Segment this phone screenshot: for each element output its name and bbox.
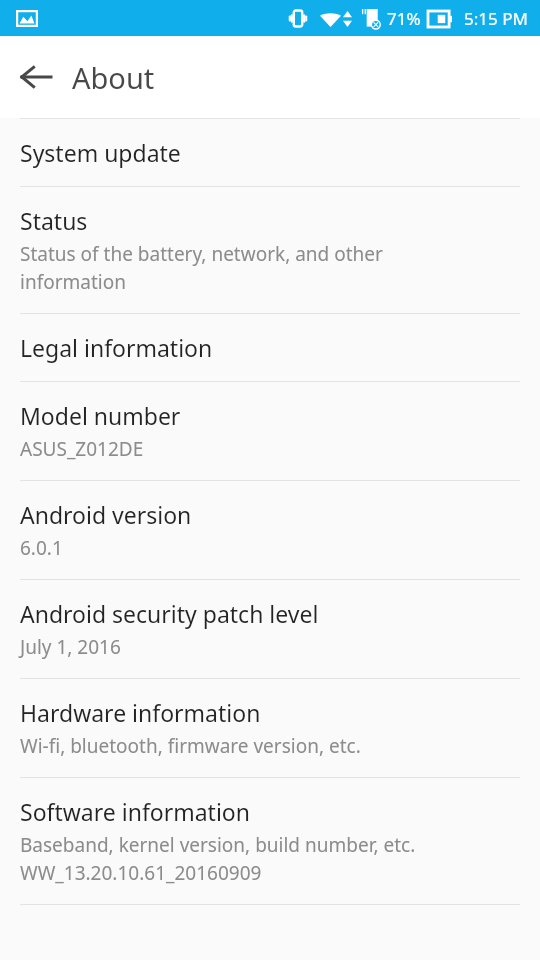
staticText: WW_13.20.10.61_20160909 (20, 860, 262, 886)
button[interactable]: Legal information (0, 314, 540, 382)
staticText: Android security patch level (20, 598, 319, 629)
staticText: Model number (20, 400, 181, 431)
button[interactable]: Status (0, 187, 540, 314)
button[interactable]: Back (8, 49, 64, 105)
button[interactable]: Software information (0, 778, 540, 905)
button[interactable]: Android version (0, 481, 540, 580)
staticText: Status of the battery, network, and othe… (20, 241, 383, 267)
button[interactable]: Model number (0, 382, 540, 481)
button[interactable]: System update (0, 119, 540, 187)
button[interactable]: Android security patch level (0, 580, 540, 679)
staticText: Android version (20, 499, 192, 530)
staticText: Baseband, kernel version, build number, … (20, 832, 416, 858)
button[interactable]: Hardware information (0, 679, 540, 778)
staticText: information (20, 269, 126, 295)
staticText: About (72, 58, 155, 97)
staticText: ASUS_Z012DE (20, 436, 144, 462)
staticText: Software information (20, 796, 250, 827)
staticText: Wi-fi, bluetooth, firmware version, etc. (20, 733, 361, 759)
staticText: 71% (387, 7, 421, 30)
staticText: System update (20, 137, 181, 168)
staticText: 6.0.1 (20, 535, 63, 561)
staticText: Legal information (20, 332, 213, 363)
staticText: July 1, 2016 (20, 634, 121, 660)
staticText: Hardware information (20, 697, 261, 728)
staticText: Status (20, 205, 88, 236)
staticText: 5:15 PM (464, 7, 528, 30)
